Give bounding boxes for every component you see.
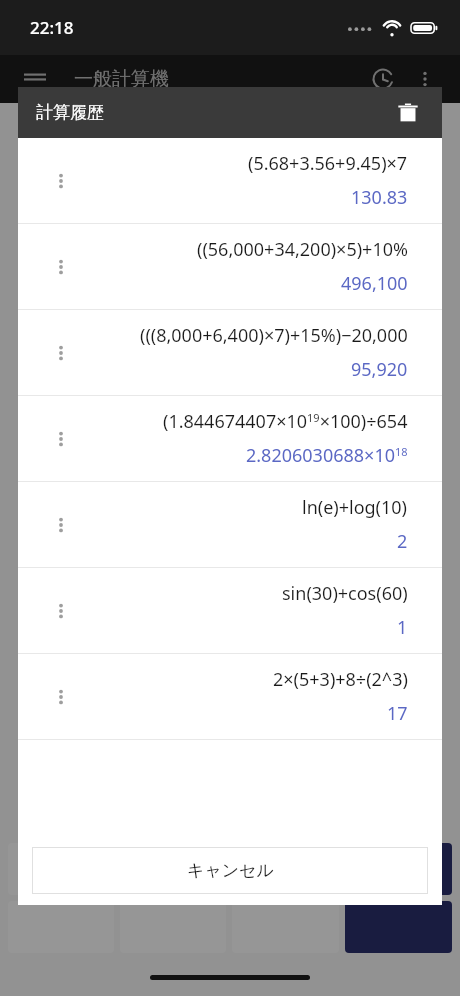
button[interactable]: Item options bbox=[18, 654, 442, 739]
button[interactable]: Item options bbox=[18, 310, 442, 395]
button[interactable]: Item options bbox=[48, 340, 74, 366]
staticText: sin(30)+cos(60) bbox=[282, 581, 408, 606]
button[interactable]: More options bbox=[408, 62, 442, 96]
button[interactable]: Item options bbox=[18, 224, 442, 309]
staticText: 2.8206030688×1018 bbox=[246, 443, 408, 468]
button[interactable] bbox=[120, 901, 226, 953]
button[interactable]: 00 bbox=[120, 843, 226, 895]
button[interactable]: 0 bbox=[8, 843, 114, 895]
staticText: 22:18 bbox=[30, 16, 74, 39]
staticText: 130.83 bbox=[351, 185, 408, 210]
button[interactable]: Clear history bbox=[388, 93, 428, 133]
staticText: 496,100 bbox=[341, 271, 408, 296]
staticText: 1 bbox=[397, 615, 408, 640]
staticText: 2 bbox=[397, 529, 408, 554]
button[interactable]: Item options bbox=[48, 168, 74, 194]
staticText: (1.844674407×1019×100)÷654 bbox=[163, 409, 408, 434]
button[interactable] bbox=[345, 843, 452, 895]
staticText: 2×(5+3)+8÷(2^3) bbox=[273, 667, 408, 692]
staticText: キャンセル bbox=[187, 860, 274, 881]
button[interactable]: Item options bbox=[48, 684, 74, 710]
button[interactable]: Menu bbox=[18, 62, 52, 96]
staticText: ((56,000+34,200)×5)+10% bbox=[197, 237, 408, 262]
staticText: (((8,000+6,400)×7)+15%)−20,000 bbox=[140, 323, 408, 348]
staticText: 95,920 bbox=[351, 357, 408, 382]
staticText: (5.68+3.56+9.45)×7 bbox=[248, 151, 408, 176]
button[interactable] bbox=[232, 901, 339, 953]
staticText: 17 bbox=[387, 701, 408, 726]
staticText: 一般計算機 bbox=[74, 67, 169, 91]
button[interactable]: Item options bbox=[48, 426, 74, 452]
button[interactable]: Item options bbox=[48, 512, 74, 538]
button[interactable]: Item options bbox=[18, 138, 442, 223]
staticText: ln(e)+log(10) bbox=[302, 495, 408, 520]
button[interactable]: Item options bbox=[18, 568, 442, 653]
staticText: 計算履歴 bbox=[36, 102, 104, 123]
button[interactable]: Item options bbox=[18, 396, 442, 481]
button[interactable] bbox=[345, 901, 452, 953]
button[interactable]: キャンセル bbox=[32, 847, 428, 894]
button[interactable]: Item options bbox=[48, 598, 74, 624]
button[interactable]: History bbox=[364, 60, 402, 98]
button[interactable]: Item options bbox=[48, 254, 74, 280]
button[interactable]: Item options bbox=[18, 482, 442, 567]
button[interactable]: . bbox=[232, 843, 339, 895]
button[interactable] bbox=[8, 901, 114, 953]
